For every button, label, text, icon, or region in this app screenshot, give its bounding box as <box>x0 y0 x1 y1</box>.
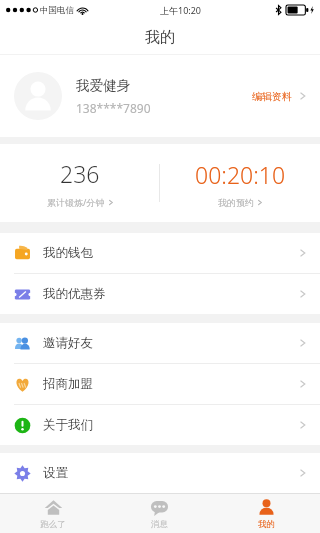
staticText: 我爱健身 <box>76 77 130 94</box>
staticText: 236 <box>60 158 100 189</box>
button[interactable]: 我的 <box>213 498 320 530</box>
button[interactable]: 设置 <box>0 453 320 493</box>
staticText: 跑么了 <box>40 519 66 530</box>
button[interactable]: 236 <box>0 158 159 208</box>
staticText: 中国电信 <box>40 5 74 16</box>
staticText: 我的预约 <box>218 197 254 208</box>
staticText: 138****7890 <box>76 100 151 116</box>
staticText: 编辑资料 <box>252 90 292 103</box>
staticText: 设置 <box>43 465 68 481</box>
button[interactable]: 消息 <box>106 498 213 530</box>
button[interactable]: 跑么了 <box>0 498 106 530</box>
button[interactable]: 我的优惠券 <box>0 274 320 314</box>
staticText: 累计锻炼/分钟 <box>47 196 105 208</box>
staticText: 消息 <box>151 519 168 530</box>
button[interactable]: 招商加盟 <box>0 364 320 404</box>
staticText: 我的 <box>258 519 275 530</box>
button[interactable]: 邀请好友 <box>0 323 320 363</box>
staticText: 我的 <box>145 28 175 47</box>
staticText: 上午10:20 <box>160 4 202 16</box>
button[interactable]: 我爱健身 <box>0 55 320 137</box>
staticText: 我的钱包 <box>43 245 93 261</box>
button[interactable]: 关于我们 <box>0 405 320 445</box>
staticText: 我的优惠券 <box>43 286 106 302</box>
staticText: 邀请好友 <box>43 335 93 351</box>
staticText: 招商加盟 <box>43 376 93 392</box>
staticText: 关于我们 <box>43 417 93 433</box>
button[interactable]: 我的钱包 <box>0 233 320 273</box>
button[interactable]: 00:20:10 <box>160 159 320 208</box>
staticText: 00:20:10 <box>195 159 286 190</box>
